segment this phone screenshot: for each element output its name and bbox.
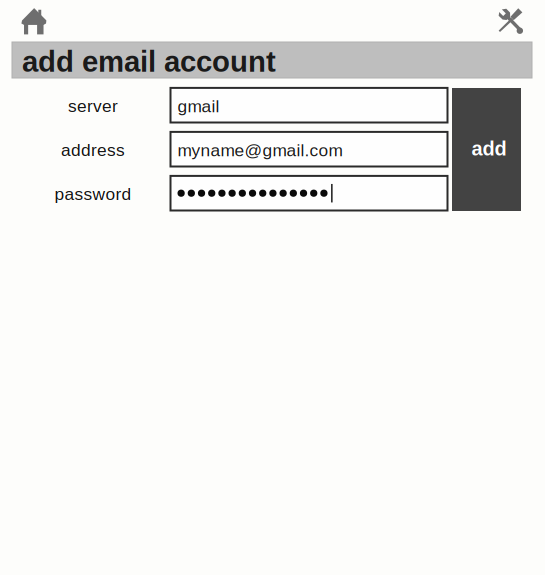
button[interactable]: server xyxy=(170,88,447,122)
staticText: password xyxy=(54,184,131,204)
button[interactable]: Home xyxy=(21,9,46,34)
staticText: myname@gmail.com xyxy=(177,140,342,160)
staticText: address xyxy=(61,140,125,160)
button[interactable]: Settings xyxy=(498,8,522,33)
staticText: add xyxy=(471,137,506,160)
staticText: gmail xyxy=(177,96,219,116)
button[interactable]: password xyxy=(170,176,447,210)
button[interactable]: add xyxy=(452,88,521,211)
staticText: add email account xyxy=(22,45,276,78)
staticText: server xyxy=(68,96,118,116)
button[interactable]: address xyxy=(170,132,447,166)
